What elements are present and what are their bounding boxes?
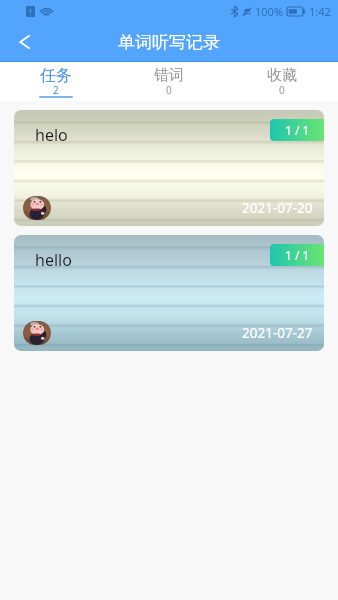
staticText: 任务 [40,66,72,86]
button[interactable]: 1 / 1 [270,244,324,266]
staticText: hello [35,249,72,271]
button[interactable]: helo [14,110,324,226]
button[interactable]: 错词 [112,62,225,101]
staticText: 2021-07-20 [242,199,313,217]
button[interactable]: 1 / 1 [270,119,324,141]
staticText: 收藏 [267,66,297,85]
staticText: 2021-07-27 [242,324,313,342]
staticText: 1:42 [309,4,331,19]
staticText: 1 / 1 [285,247,310,263]
button[interactable]: hello [14,235,324,351]
staticText: 0 [279,83,285,97]
staticText: 0 [166,83,172,97]
button[interactable]: Back [0,22,48,62]
button[interactable]: 收藏 [225,62,338,101]
button[interactable]: 任务 [0,62,112,101]
staticText: helo [35,124,68,146]
staticText: 2 [53,83,59,97]
staticText: 单词听写记录 [118,32,220,53]
staticText: 错词 [154,66,184,85]
staticText: 100% [255,4,284,19]
staticText: 1 / 1 [285,122,310,138]
